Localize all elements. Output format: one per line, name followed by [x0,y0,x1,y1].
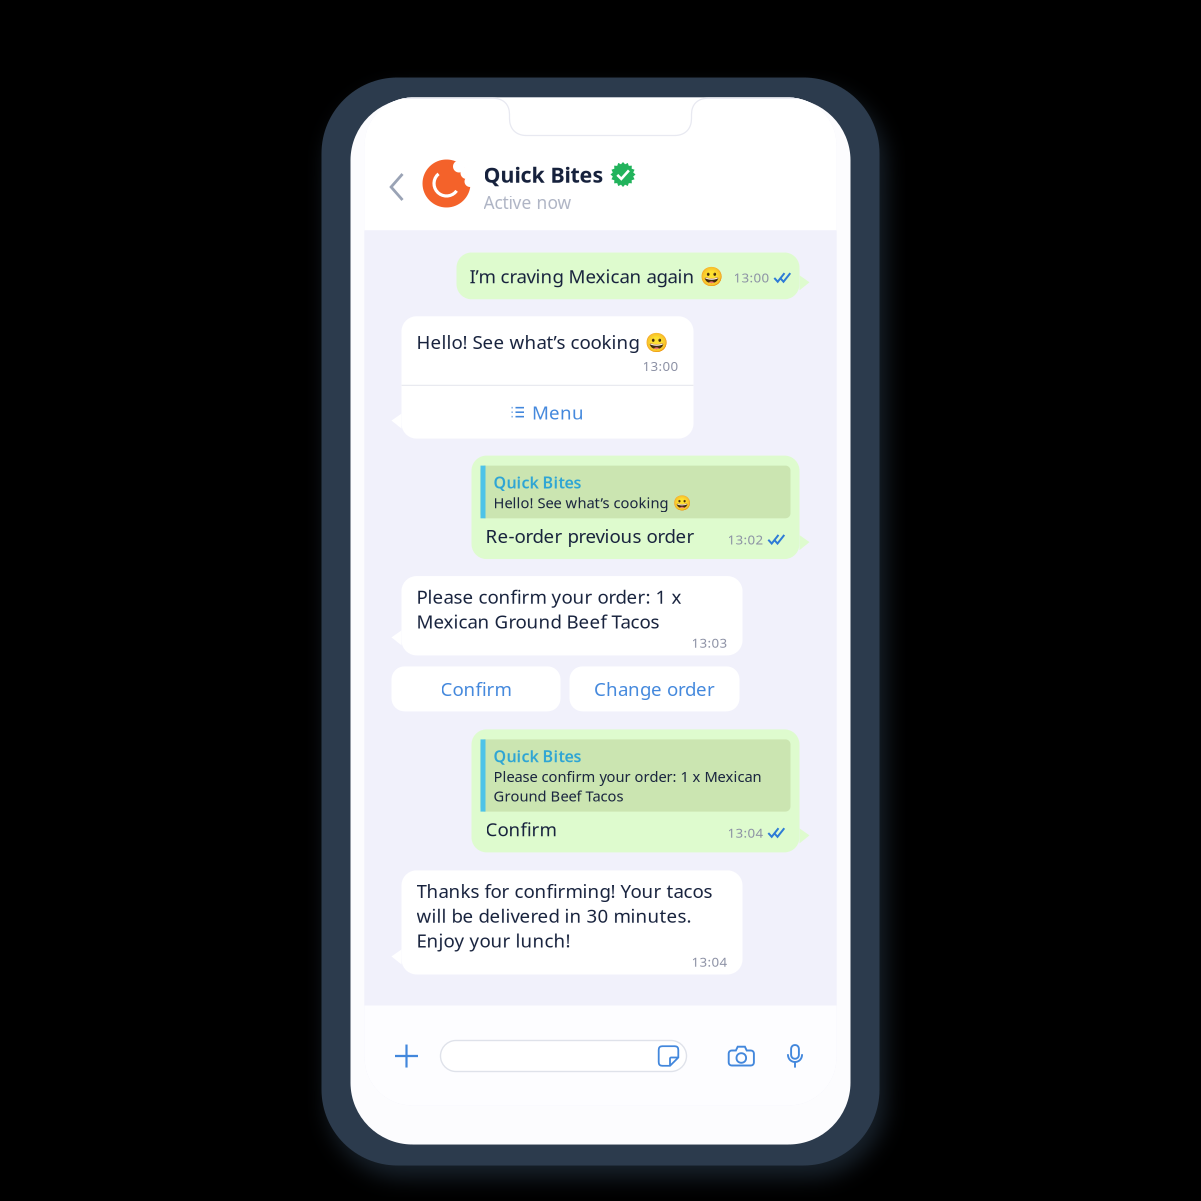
button[interactable]: Menu [401,386,693,439]
staticText: Quick Bites [493,472,581,493]
staticText: 13:03 [691,634,727,651]
staticText: Hello! See what’s cooking 😀 [493,493,690,512]
staticText: Quick Bites [483,160,603,189]
button[interactable]: Add attachment [393,1043,419,1069]
staticText: 13:04 [691,953,727,970]
staticText: 13:02 [727,530,763,548]
staticText: Quick Bites [493,745,581,767]
staticText: 13:00 [642,357,678,375]
button[interactable]: Confirm [391,666,560,711]
staticText: Ground Beef Tacos [493,786,623,806]
button[interactable]: Type a message [440,1040,686,1071]
staticText: Confirm [485,817,556,841]
staticText: Please confirm your order: 1 x Mexican [493,767,761,786]
button[interactable]: Change order [569,666,739,711]
button[interactable]: Back [385,166,414,208]
button[interactable]: Camera [727,1044,755,1067]
staticText: Menu [532,400,584,425]
staticText: I’m craving Mexican again 😀 [469,263,722,288]
staticText: Confirm [440,676,511,701]
staticText: 13:04 [727,824,763,841]
staticText: Please confirm your order: 1 x Mexican G… [416,584,681,634]
staticText: Re-order previous order [485,523,694,548]
staticText: Thanks for confirming! Your tacos will b… [416,878,712,953]
staticText: Hello! See what’s cooking 😀 [416,329,667,354]
staticText: Change order [594,676,715,701]
staticText: Active now [483,191,571,214]
button[interactable]: Record voice message [786,1043,803,1069]
staticText: 13:00 [733,269,769,286]
